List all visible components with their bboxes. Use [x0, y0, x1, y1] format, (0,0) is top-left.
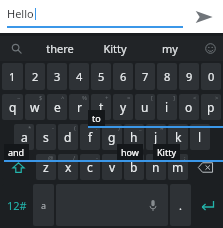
button[interactable]: x [58, 154, 78, 180]
button[interactable]: Shift [2, 154, 34, 180]
button[interactable]: f [80, 124, 100, 150]
staticText: z [43, 159, 49, 175]
button[interactable]: g [102, 124, 122, 150]
button[interactable]: Language [33, 184, 54, 226]
button[interactable]: 8 [157, 63, 177, 90]
button[interactable]: how [117, 144, 223, 162]
button[interactable]: c [80, 154, 100, 180]
button[interactable]: o [179, 94, 199, 120]
staticText: 4 [76, 69, 83, 84]
staticText: a [41, 199, 47, 211]
button[interactable]: there [32, 36, 87, 61]
button[interactable]: my [142, 36, 197, 61]
staticText: v [109, 159, 116, 175]
staticText: ^ [61, 94, 65, 102]
staticText: ' [118, 154, 120, 162]
button[interactable]: Enter [193, 184, 221, 226]
button[interactable]: p [201, 94, 221, 120]
button[interactable]: Kitty [87, 36, 142, 61]
staticText: : [96, 124, 98, 132]
button[interactable]: 2 [25, 63, 45, 90]
staticText: ] [173, 94, 175, 102]
button[interactable]: s [36, 124, 56, 150]
staticText: . [179, 198, 182, 213]
button[interactable]: 6 [113, 63, 133, 90]
button[interactable]: . [170, 184, 191, 226]
staticText: ~ [17, 94, 21, 102]
button[interactable]: Search [0, 36, 32, 61]
button[interactable]: Kitty [153, 144, 223, 162]
button[interactable]: a [14, 124, 34, 150]
button[interactable]: to [88, 110, 223, 128]
staticText: my [162, 41, 178, 56]
staticText: t [99, 99, 104, 115]
staticText: % [82, 94, 87, 102]
staticText: + [105, 94, 109, 102]
button[interactable]: y [113, 94, 133, 120]
staticText: q [9, 99, 17, 115]
staticText: > [215, 94, 219, 102]
button[interactable]: b [124, 154, 144, 180]
button[interactable]: n [146, 154, 166, 180]
button[interactable]: 0 [201, 63, 221, 90]
staticText: # [160, 124, 164, 132]
staticText: 7 [142, 69, 149, 84]
button[interactable]: q [2, 94, 23, 120]
staticText: - [96, 154, 98, 162]
staticText: b [130, 159, 138, 175]
staticText: u [141, 99, 149, 115]
staticText: h [130, 129, 138, 145]
button[interactable]: z [36, 154, 56, 180]
button[interactable]: 9 [179, 63, 199, 90]
staticText: there [46, 41, 74, 56]
button[interactable]: 12# [2, 184, 31, 226]
button[interactable]: w [25, 94, 45, 120]
staticText: how [121, 146, 139, 158]
button[interactable]: j [146, 124, 166, 150]
staticText: 6 [120, 69, 127, 84]
button[interactable]: i [157, 94, 177, 120]
button[interactable]: r [69, 94, 89, 120]
staticText: = [127, 94, 131, 102]
staticText: f [88, 129, 93, 145]
button[interactable]: k [168, 124, 188, 150]
staticText: a [21, 129, 28, 145]
staticText: 8 [164, 69, 171, 84]
button[interactable]: Emoji [197, 36, 223, 61]
button[interactable]: Send [190, 3, 218, 31]
button[interactable]: Space [56, 184, 168, 226]
button[interactable]: 5 [91, 63, 111, 90]
button[interactable]: d [58, 124, 78, 150]
button[interactable]: 4 [69, 63, 89, 90]
button[interactable]: m [168, 154, 188, 180]
staticText: ) [118, 124, 120, 132]
staticText: k [175, 129, 182, 145]
staticText: m [172, 159, 184, 175]
staticText: l [198, 129, 202, 145]
staticText: * [28, 124, 32, 132]
button[interactable]: 7 [135, 63, 155, 90]
button[interactable]: u [135, 94, 155, 120]
button[interactable]: 1 [2, 63, 23, 90]
staticText: i [165, 99, 169, 115]
staticText: g [108, 129, 116, 145]
staticText: ! [140, 154, 142, 162]
button[interactable]: t [91, 94, 111, 120]
button[interactable]: l [190, 124, 210, 150]
staticText: [ [151, 94, 153, 102]
button[interactable]: e [47, 94, 67, 120]
button[interactable]: v [102, 154, 122, 180]
staticText: y [120, 99, 127, 115]
button[interactable]: Backspace [190, 154, 221, 180]
staticText: 3 [54, 69, 61, 84]
staticText: 2 [32, 69, 39, 84]
button[interactable]: h [124, 124, 144, 150]
staticText: to [92, 112, 101, 124]
staticText: 5 [98, 69, 105, 84]
staticText: w [30, 99, 40, 115]
staticText: $ [39, 94, 43, 102]
staticText: 0 [208, 69, 215, 84]
staticText: n [152, 159, 160, 175]
button[interactable]: and [4, 144, 223, 162]
button[interactable]: 3 [47, 63, 67, 90]
